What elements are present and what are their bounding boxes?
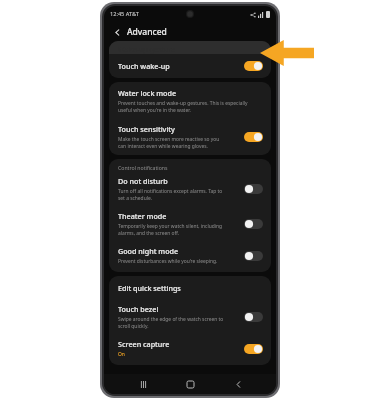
button[interactable]: Toggle off (244, 219, 263, 229)
button[interactable]: Wake-up gesture (109, 41, 271, 54)
staticText: Theater mode (118, 211, 167, 221)
button[interactable]: Back (110, 25, 124, 39)
button[interactable]: Screen capture (109, 335, 271, 365)
button[interactable]: Touch wake-up (109, 54, 271, 78)
staticText: Good night mode (118, 246, 179, 256)
staticText: Edit quick settings (118, 283, 181, 293)
button[interactable]: Water lock mode (109, 82, 271, 119)
staticText: Temporarily keep your watch silent, incl… (118, 223, 223, 236)
staticText: Touch sensitivity (118, 124, 175, 134)
staticText: Control notifications (118, 164, 168, 171)
button[interactable]: Toggle on (244, 344, 263, 354)
staticText: Advanced (127, 26, 167, 38)
staticText: Make the touch screen more reactive so y… (118, 136, 220, 149)
staticText: Prevent disturbances while you're sleepi… (118, 258, 218, 265)
staticText: Touch bezel (118, 304, 159, 314)
button[interactable]: Toggle off (244, 251, 263, 261)
staticText: Touch wake-up (118, 61, 170, 71)
staticText: Do not disturb (118, 176, 168, 186)
staticText: 12:45 AT&T (110, 10, 140, 18)
button[interactable]: Touch bezel (109, 300, 271, 335)
button[interactable]: Back (229, 375, 247, 393)
button[interactable]: Toggle on (244, 132, 263, 142)
button[interactable]: Do not disturb (109, 173, 271, 207)
staticText: On (118, 351, 125, 358)
staticText: Screen capture (118, 339, 170, 349)
staticText: Prevent touches and wake-up gestures. Th… (118, 100, 248, 113)
button[interactable]: Theater mode (109, 207, 271, 242)
staticText: Turn off all notifications except alarms… (118, 188, 223, 201)
button[interactable]: Home (181, 375, 199, 393)
button[interactable]: Toggle off (244, 312, 263, 322)
button[interactable]: Touch sensitivity (109, 119, 271, 155)
button[interactable]: Good night mode (109, 242, 271, 272)
button[interactable]: Recents (134, 375, 152, 393)
button[interactable]: Toggle off (244, 184, 263, 194)
staticText: Swipe around the edge of the watch scree… (118, 316, 224, 329)
staticText: Water lock mode (118, 88, 177, 98)
button[interactable]: Edit quick settings (109, 276, 271, 300)
button[interactable]: Toggle on (244, 61, 263, 71)
